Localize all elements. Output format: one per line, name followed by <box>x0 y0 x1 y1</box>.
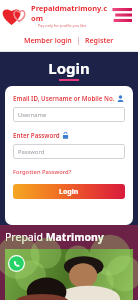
button[interactable]: Password <box>13 144 125 159</box>
staticText: Forgotten Password? <box>13 168 72 176</box>
button[interactable]: Forgotten Password? <box>13 166 72 178</box>
staticText: Enter Password <box>13 131 60 139</box>
staticText: Password <box>18 148 45 156</box>
button[interactable]: Login <box>13 184 125 199</box>
staticText: Login <box>59 187 79 197</box>
button[interactable]: Open navigation menu <box>110 4 134 26</box>
staticText: Email ID, Username or Mobile No. <box>13 94 115 102</box>
button[interactable]: Member login <box>18 32 78 50</box>
button[interactable]: Chat on WhatsApp <box>8 255 25 272</box>
staticText: Login <box>48 58 90 78</box>
staticText: Member login <box>24 36 72 46</box>
button[interactable]: Register <box>79 32 120 50</box>
staticText: Prepaidmatrimony.com <box>31 3 110 23</box>
staticText: Prepaid Matrimony <box>5 230 104 244</box>
button[interactable]: Username <box>13 107 125 122</box>
staticText: Username <box>18 111 47 119</box>
staticText: Register <box>85 36 114 46</box>
staticText: Pay only for profile you like <box>38 23 87 28</box>
